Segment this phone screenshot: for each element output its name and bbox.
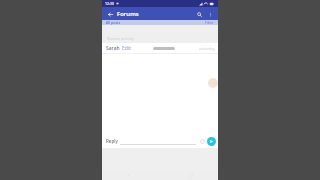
- button[interactable]: More options: [205, 9, 215, 19]
- button[interactable]: Back: [105, 9, 115, 19]
- button[interactable]: Search: [194, 9, 204, 19]
- button[interactable]: Sarah: [102, 43, 218, 54]
- button[interactable]: Filter: [205, 20, 214, 25]
- button[interactable]: Send: [207, 137, 216, 146]
- staticText: yesterday: [199, 46, 215, 51]
- staticText: Filter: [205, 20, 214, 25]
- staticText: All posts: [106, 20, 121, 25]
- staticText: Sarah: [106, 45, 120, 52]
- button[interactable]: [120, 137, 196, 145]
- staticText: Edit: [122, 45, 131, 52]
- staticText: 12:30: [105, 1, 114, 6]
- staticText: Reply: [106, 138, 118, 144]
- button[interactable]: Add attachment: [198, 137, 206, 145]
- staticText: Recent activity: [107, 36, 135, 41]
- button[interactable]: All posts: [106, 20, 121, 25]
- staticText: Forums: [117, 10, 194, 18]
